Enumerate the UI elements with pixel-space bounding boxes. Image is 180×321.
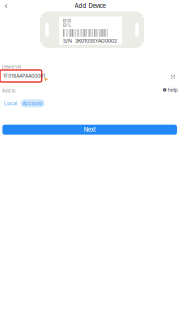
button[interactable]: Scan code [168, 72, 177, 81]
staticText: Next [84, 126, 96, 133]
staticText: help [168, 87, 178, 93]
staticText: Add Device [74, 2, 105, 9]
button[interactable]: Local [3, 99, 18, 107]
staticText: Account [22, 100, 42, 106]
staticText: Local [4, 100, 17, 106]
staticText: 1F018AAPAA00001 [3, 73, 45, 79]
button[interactable]: Next [2, 125, 177, 135]
button[interactable]: help [162, 85, 179, 94]
button[interactable]: Account [21, 99, 44, 107]
staticText: Device SN [2, 64, 21, 70]
button[interactable]: Back [0, 0, 12, 12]
staticText: Add to [2, 88, 16, 93]
staticText: S/N 3K0103SYAG0002 [63, 38, 117, 44]
